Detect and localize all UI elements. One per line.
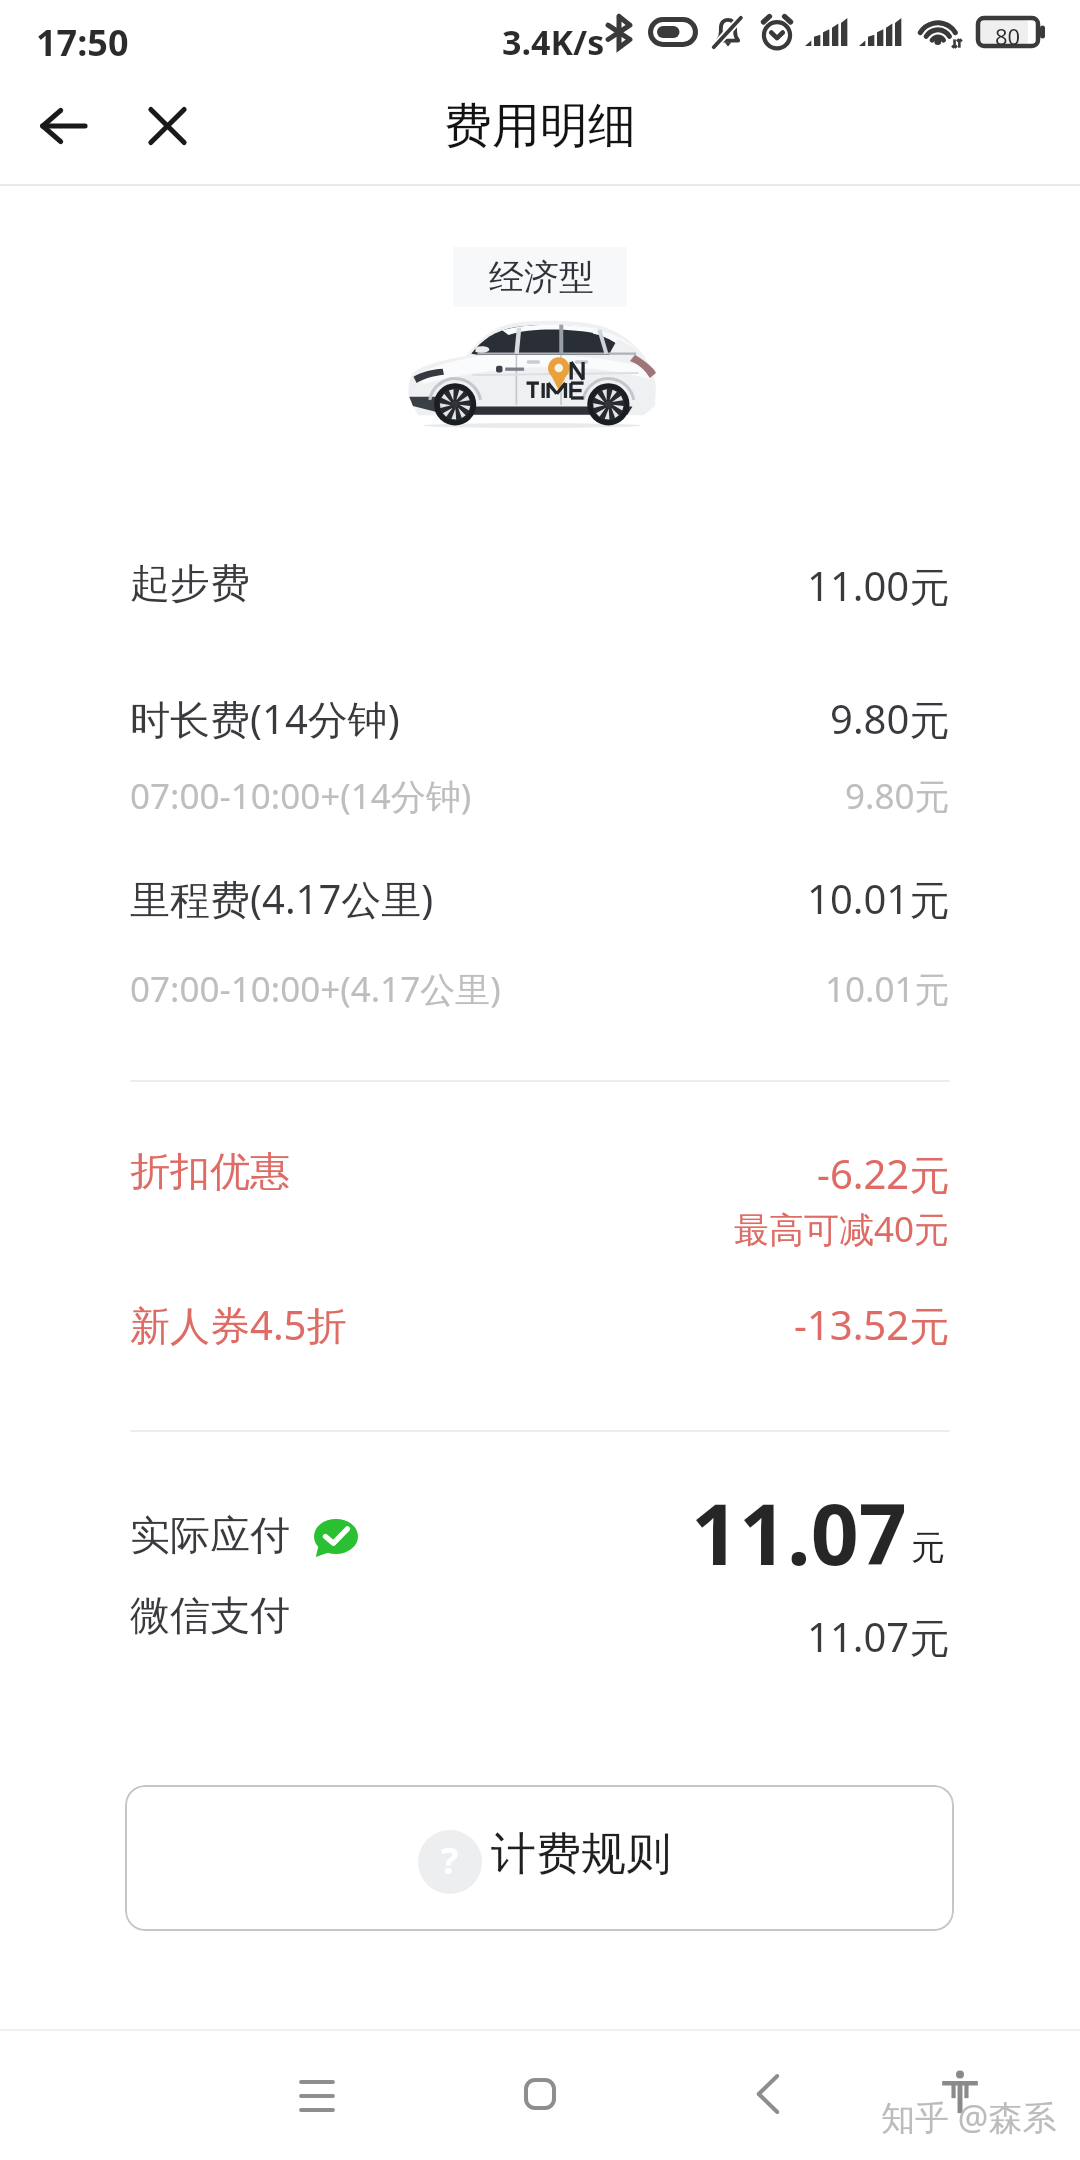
staticText: 经济型 xyxy=(489,255,594,299)
staticText: 07:00-10:00+(4.17公里) xyxy=(130,965,501,1013)
staticText: -13.52元 xyxy=(794,1297,950,1352)
button[interactable]: Back xyxy=(21,84,105,168)
staticText: ? xyxy=(441,1836,459,1885)
staticText: 新人券4.5折 xyxy=(130,1297,347,1352)
staticText: 时长费(14分钟) xyxy=(130,691,400,746)
staticText: -6.22元 xyxy=(817,1146,950,1201)
button[interactable]: Accessibility xyxy=(900,2032,1020,2152)
button[interactable]: Back xyxy=(708,2034,828,2154)
staticText: 11.07 xyxy=(691,1475,907,1589)
button[interactable]: Close xyxy=(125,84,209,168)
staticText: 10.01元 xyxy=(807,871,950,926)
staticText: 9.80元 xyxy=(845,772,950,820)
staticText: 元 xyxy=(911,1526,945,1569)
staticText: 计费规则 xyxy=(491,1826,671,1883)
staticText: 起步费 xyxy=(130,558,250,608)
staticText: 11.07元 xyxy=(807,1609,950,1664)
staticText: 实际应付 xyxy=(130,1510,290,1560)
button[interactable]: 里程费(4.17公里) xyxy=(0,871,1080,926)
button[interactable]: ? xyxy=(125,1785,954,1931)
staticText: 里程费(4.17公里) xyxy=(130,871,434,926)
staticText: 11.00元 xyxy=(807,558,950,613)
staticText: 3.4K/s xyxy=(502,19,605,65)
button[interactable]: 折扣优惠 xyxy=(0,1146,1080,1201)
staticText: 知乎 @森系 xyxy=(881,2094,1057,2140)
staticText: 折扣优惠 xyxy=(130,1146,290,1196)
staticText: 17:50 xyxy=(36,18,129,67)
staticText: 9.80元 xyxy=(830,691,950,746)
staticText: 80 xyxy=(995,21,1021,51)
staticText: 07:00-10:00+(14分钟) xyxy=(130,772,472,820)
staticText: 费用明细 xyxy=(444,96,636,156)
button[interactable]: Home xyxy=(480,2034,600,2154)
staticText: 微信支付 xyxy=(130,1590,290,1640)
button[interactable]: 时长费(14分钟) xyxy=(0,691,1080,746)
button[interactable]: 起步费 xyxy=(0,558,1080,613)
button[interactable]: 新人券4.5折 xyxy=(0,1297,1080,1352)
staticText: 10.01元 xyxy=(825,965,950,1013)
staticText: 最高可减40元 xyxy=(734,1205,950,1253)
button[interactable]: Recent apps xyxy=(257,2034,377,2154)
